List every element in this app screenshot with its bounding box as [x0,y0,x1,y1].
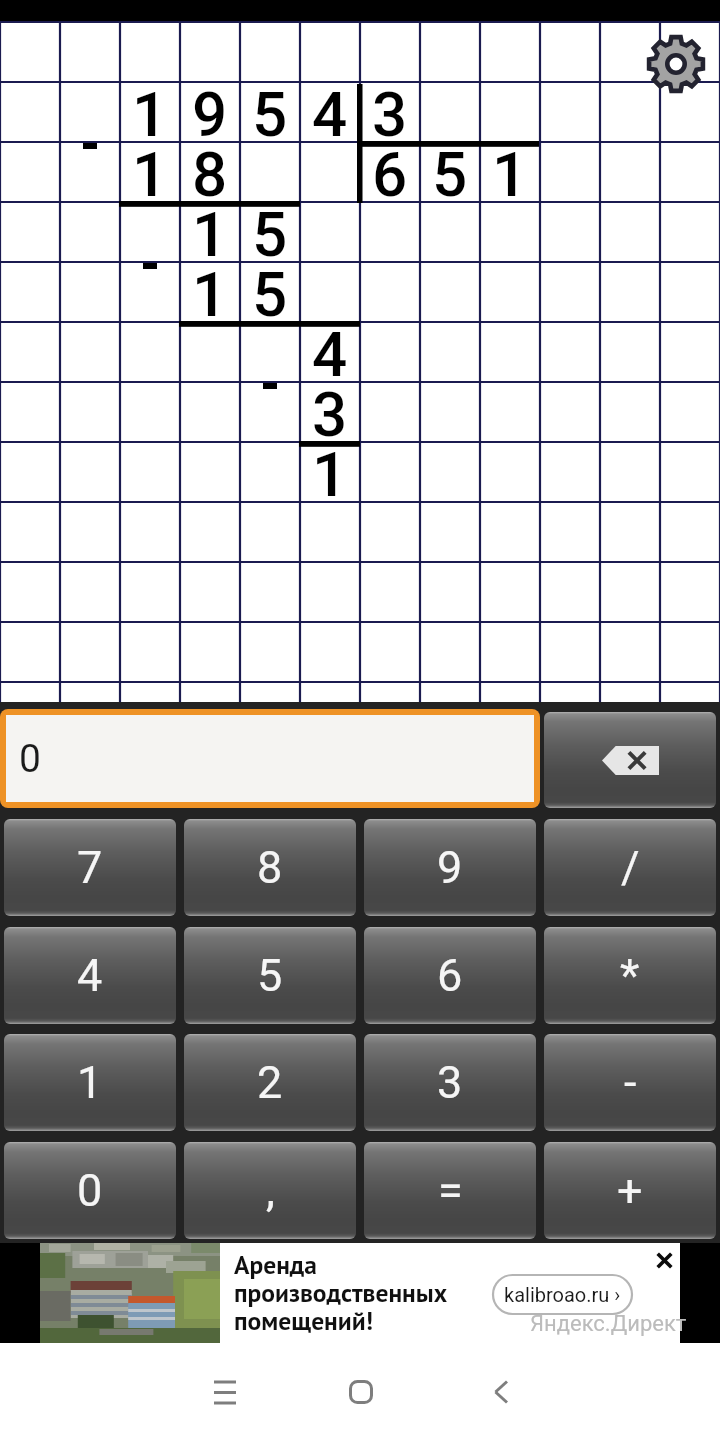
staticText: 1 [132,78,168,140]
staticText: 1 [192,198,228,260]
staticText: 1 [77,1056,103,1109]
staticText: 1 [132,138,168,200]
staticText: + [617,1164,643,1217]
button[interactable]: * [544,927,716,1024]
staticText: - [624,1056,637,1109]
button[interactable]: 0 [4,1142,176,1239]
staticText: 5 [252,198,288,260]
staticText: 1 [312,438,348,500]
button[interactable]: Аренда производственных помещений! [40,1243,680,1343]
button[interactable]: + [544,1142,716,1239]
staticText: 5 [432,138,468,200]
staticText: 0 [19,736,41,782]
button[interactable]: 5 [184,927,356,1024]
staticText: 6 [372,138,408,200]
staticText: Аренда производственных помещений! [234,1248,448,1337]
button[interactable] [544,712,716,808]
button[interactable]: = [364,1142,536,1239]
staticText: = [438,1164,463,1217]
button[interactable]: 8 [184,819,356,916]
staticText: 4 [312,318,348,380]
staticText: 3 [437,1056,463,1109]
button[interactable]: - [544,1034,716,1131]
button[interactable]: / [544,819,716,916]
staticText: 8 [192,138,228,200]
button[interactable]: 2 [184,1034,356,1131]
staticText: 2 [257,1056,283,1109]
staticText: 4 [77,949,103,1002]
staticText: 6 [437,949,463,1002]
staticText: 7 [77,841,103,894]
staticText: , [266,1164,275,1217]
button[interactable]: 9 [364,819,536,916]
button[interactable]: Settings [645,33,707,95]
staticText: / [621,841,640,894]
staticText: 1 [192,258,228,320]
button[interactable]: Close ad [642,1238,686,1282]
button[interactable]: Home [313,1344,409,1440]
button[interactable]: kalibroao.ru › [492,1274,633,1315]
button[interactable]: 1 [4,1034,176,1131]
staticText: 5 [252,78,288,140]
staticText: 3 [372,78,408,140]
button[interactable]: , [184,1142,356,1239]
staticText: kalibroao.ru › [504,1283,621,1306]
staticText: 9 [437,841,463,894]
button[interactable]: 7 [4,819,176,916]
button[interactable]: 4 [4,927,176,1024]
button[interactable]: 6 [364,927,536,1024]
other: Backspace [544,712,716,808]
staticText: 9 [192,78,228,140]
staticText: Яндекс.Директ [530,1311,687,1337]
staticText: 5 [252,258,288,320]
staticText: 4 [312,78,348,140]
button[interactable]: Recent apps [177,1344,273,1440]
staticText: 0 [77,1164,103,1217]
staticText: 1 [492,138,528,200]
button[interactable]: 0 [6,715,534,802]
button[interactable]: 3 [364,1034,536,1131]
staticText: 8 [257,841,283,894]
staticText: * [620,949,640,1002]
staticText: 5 [257,949,283,1002]
button[interactable]: Back [452,1344,548,1440]
staticText: 3 [312,378,348,440]
